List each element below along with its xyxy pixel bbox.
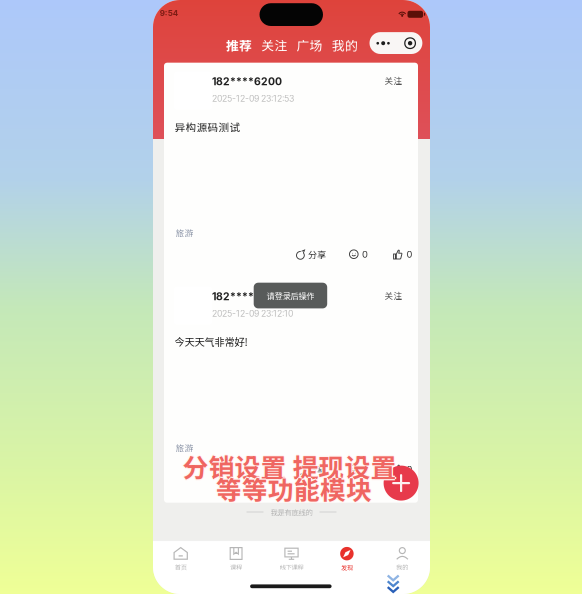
- staticText: 0: [406, 464, 412, 475]
- staticText: 0: [362, 249, 368, 260]
- staticText: 等等功能模块: [216, 470, 372, 507]
- button[interactable]: 0: [349, 464, 368, 475]
- staticText: 等等功能模块: [216, 469, 372, 506]
- button[interactable]: 0: [349, 249, 368, 260]
- button[interactable]: 我的: [332, 36, 358, 54]
- staticText: 发现: [341, 563, 353, 572]
- staticText: 广场: [297, 36, 323, 54]
- staticText: 182****6200: [212, 75, 282, 88]
- staticText: 关注: [261, 36, 287, 54]
- staticText: 课程: [230, 563, 242, 572]
- staticText: 关注: [384, 74, 402, 86]
- staticText: 线下课程: [279, 562, 303, 571]
- staticText: 182****6200: [212, 290, 282, 303]
- button[interactable]: 旅游: [175, 442, 193, 454]
- button[interactable]: 分享: [296, 248, 326, 261]
- button[interactable]: 小程序菜单: [369, 32, 422, 54]
- button[interactable]: 182****6200: [212, 290, 342, 324]
- button[interactable]: 关注: [382, 74, 402, 86]
- staticText: 关注: [384, 289, 402, 301]
- button[interactable]: 广场: [297, 36, 323, 54]
- button[interactable]: 旅游: [175, 227, 193, 239]
- staticText: 2025-12-09 23:12:53: [212, 93, 294, 104]
- staticText: 分享: [308, 248, 326, 261]
- button[interactable]: 182****6200: [212, 75, 342, 109]
- button[interactable]: 0: [393, 464, 412, 475]
- staticText: 请登录后操作: [266, 290, 314, 302]
- staticText: 等等功能模块: [216, 471, 372, 508]
- staticText: 我的: [332, 36, 358, 54]
- staticText: 分销设置 提现设置: [181, 447, 395, 485]
- staticText: 等等功能模块: [215, 470, 371, 507]
- staticText: 异构源码测试: [174, 119, 240, 134]
- staticText: 分享: [308, 463, 326, 476]
- staticText: 分销设置 提现设置: [182, 447, 396, 485]
- button[interactable]: 推荐: [226, 36, 252, 54]
- staticText: 分销设置 提现设置: [184, 447, 398, 485]
- staticText: 0: [362, 464, 368, 475]
- staticText: 我的: [396, 563, 408, 572]
- button[interactable]: 关注: [261, 36, 287, 54]
- staticText: 2025-12-09 23:12:10: [212, 308, 293, 319]
- staticText: 0: [406, 249, 412, 260]
- button[interactable]: 关注: [382, 289, 402, 301]
- staticText: 等等功能模块: [217, 470, 373, 507]
- staticText: 推荐: [226, 36, 252, 54]
- button[interactable]: 课程: [208, 540, 264, 584]
- staticText: 9:54: [160, 8, 178, 18]
- button[interactable]: 发现: [319, 540, 375, 584]
- button[interactable]: 线下课程: [264, 540, 319, 584]
- button[interactable]: 我的: [375, 540, 430, 584]
- button[interactable]: 0: [393, 249, 412, 260]
- staticText: 我是有底线的: [270, 507, 312, 517]
- staticText: 旅游: [175, 226, 193, 239]
- staticText: 旅游: [175, 441, 193, 454]
- staticText: 分销设置 提现设置: [182, 446, 396, 483]
- button[interactable]: 发布: [384, 466, 419, 501]
- button[interactable]: 分享: [296, 463, 326, 476]
- staticText: 分销设置 提现设置: [182, 449, 396, 486]
- staticText: 首页: [175, 562, 187, 571]
- staticText: 今天天气非常好!: [174, 334, 247, 349]
- button[interactable]: 首页: [153, 540, 208, 584]
